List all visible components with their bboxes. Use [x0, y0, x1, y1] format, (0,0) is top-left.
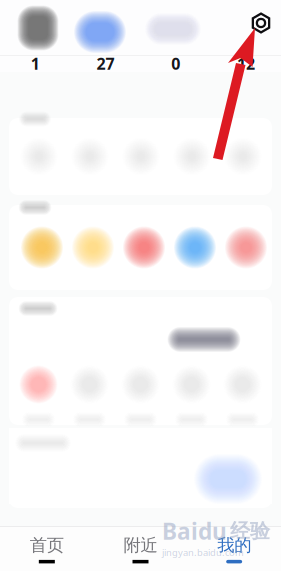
button[interactable] — [13, 130, 64, 206]
button[interactable] — [166, 359, 217, 433]
button[interactable]: Settings — [246, 8, 276, 38]
button[interactable]: 首页 — [0, 527, 94, 571]
button[interactable] — [217, 130, 268, 206]
staticText: 27 — [96, 53, 114, 74]
staticText: 我的 — [217, 535, 251, 556]
button[interactable]: 27 — [70, 55, 140, 72]
staticText: 1 — [31, 53, 40, 74]
staticText: 0 — [171, 53, 180, 74]
button[interactable] — [217, 359, 268, 433]
staticText: Baidu — [162, 516, 227, 546]
button[interactable]: 12 — [211, 55, 281, 72]
button[interactable] — [115, 359, 166, 433]
button[interactable] — [217, 218, 268, 300]
staticText: 附近 — [123, 535, 157, 556]
button[interactable] — [64, 218, 115, 300]
staticText: jingyan.baidu.com — [162, 546, 244, 558]
button[interactable] — [64, 130, 115, 206]
button[interactable] — [115, 130, 166, 206]
staticText: 首页 — [30, 535, 64, 556]
staticText: 经验 — [230, 519, 270, 543]
staticText: 12 — [237, 53, 255, 74]
button[interactable] — [13, 359, 64, 433]
button[interactable]: 我的 — [187, 527, 281, 571]
button[interactable]: 附近 — [94, 527, 187, 571]
button[interactable] — [13, 218, 64, 300]
button[interactable] — [166, 218, 217, 300]
button[interactable]: 1 — [0, 55, 70, 72]
button[interactable] — [166, 130, 217, 206]
button[interactable]: 0 — [140, 55, 211, 72]
button[interactable] — [64, 359, 115, 433]
button[interactable] — [115, 218, 166, 300]
